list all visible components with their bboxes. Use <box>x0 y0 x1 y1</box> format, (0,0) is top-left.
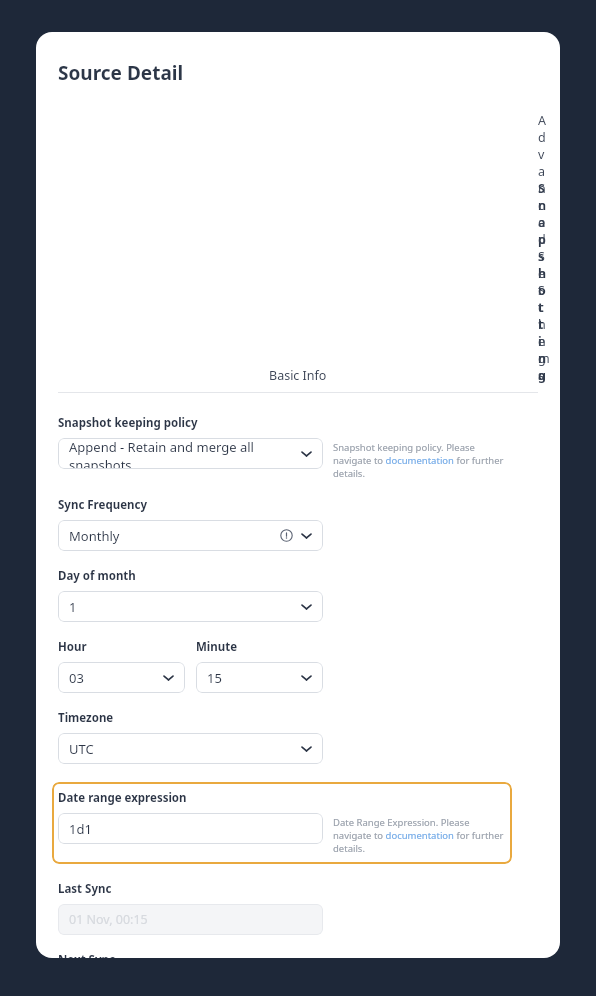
staticText: Date range expression <box>58 790 187 806</box>
staticText: Timezone <box>58 710 114 726</box>
staticText: Day of month <box>58 568 136 584</box>
staticText: Hour <box>58 639 87 655</box>
button[interactable]: Basic Info <box>58 367 538 393</box>
staticText: 15 <box>207 669 299 687</box>
button[interactable]: UTC <box>58 733 323 764</box>
button[interactable]: 1 <box>58 591 323 622</box>
button[interactable]: 1d1 <box>58 813 323 844</box>
staticText: Minute <box>196 639 238 655</box>
staticText: Last Sync <box>58 881 112 897</box>
staticText: Snapshot keeping policy <box>58 415 198 431</box>
staticText: 03 <box>69 669 161 687</box>
staticText: Source Detail <box>58 60 184 86</box>
button[interactable]: Append - Retain and merge all snapshots <box>58 438 323 469</box>
staticText: Next Sync <box>58 952 115 958</box>
staticText: Monthly <box>69 527 280 545</box>
staticText: UTC <box>69 740 299 758</box>
staticText: Append - Retain and merge all snapshots <box>69 438 299 469</box>
staticText: 1d1 <box>69 820 92 838</box>
staticText: Sync Frequency <box>58 497 147 513</box>
button[interactable]: Date Range Expression. Please navigate t… <box>333 816 506 855</box>
button[interactable]: Monthly <box>58 520 323 551</box>
staticText: Basic Info <box>269 367 327 384</box>
button[interactable]: 03 <box>58 662 185 693</box>
button[interactable]: Snapshot keeping policy. Please navigate… <box>333 441 515 480</box>
button[interactable]: 15 <box>196 662 323 693</box>
staticText: 01 Nov, 00:15 <box>69 911 148 928</box>
staticText: 1 <box>69 598 299 616</box>
